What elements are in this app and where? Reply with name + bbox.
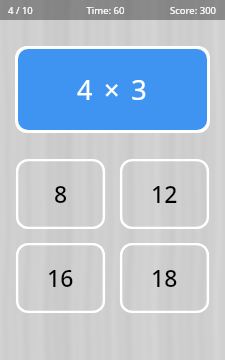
button[interactable]: 16 (16, 243, 105, 313)
button[interactable]: 12 (120, 159, 209, 229)
button[interactable]: 4 × 3 (18, 49, 207, 130)
button[interactable]: 8 (16, 159, 105, 229)
staticText: 4 × 3 (77, 71, 149, 108)
staticText: 18 (151, 262, 178, 293)
staticText: 8 (54, 178, 68, 209)
staticText: 12 (151, 178, 178, 209)
button[interactable]: 18 (120, 243, 209, 313)
staticText: Score: 300 (140, 4, 216, 17)
staticText: 4 / 10 (8, 4, 71, 17)
staticText: Time: 60 (71, 4, 140, 17)
staticText: 16 (47, 262, 74, 293)
